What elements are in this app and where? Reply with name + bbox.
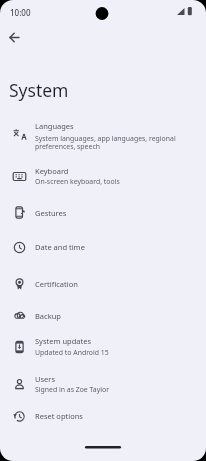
staticText: 10:00 [10,7,31,18]
button[interactable] [0,229,206,265]
staticText: System [9,78,69,102]
button[interactable] [0,265,206,301]
staticText: Certification [35,279,78,289]
staticText: Keyboard [35,166,69,176]
staticText: System languages, app languages, regiona… [35,134,176,151]
button[interactable] [0,402,206,433]
staticText: Gestures [35,208,67,218]
staticText: Languages [35,121,74,131]
button[interactable] [0,158,206,196]
button[interactable] [0,196,206,229]
button[interactable] [0,367,206,402]
staticText: Date and time [35,242,85,252]
staticText: Users [35,374,55,384]
staticText: Backup [35,311,61,321]
staticText: System updates [35,336,92,346]
staticText: Updated to Android 15 [35,348,109,357]
button[interactable] [4,26,27,49]
staticText: On-screen keyboard, tools [35,177,120,186]
staticText: Signed in as Zoe Taylor [35,385,109,394]
staticText: Reset options [35,411,83,421]
button[interactable] [0,114,206,158]
button[interactable] [0,301,206,332]
button[interactable] [0,332,206,367]
